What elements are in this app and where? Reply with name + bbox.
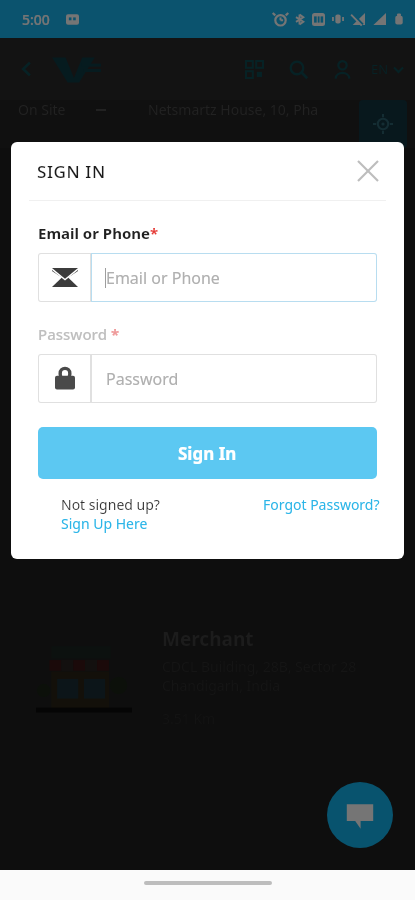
button[interactable]: Search bbox=[283, 54, 313, 84]
staticText: Password bbox=[106, 368, 179, 390]
staticText: Merchant bbox=[162, 626, 254, 652]
button[interactable]: On Site bbox=[18, 100, 148, 119]
button[interactable]: Back bbox=[10, 52, 44, 86]
staticText: SIGN IN bbox=[37, 160, 106, 183]
staticText: Password bbox=[38, 324, 111, 344]
button[interactable]: Locate me bbox=[359, 100, 407, 148]
button[interactable]: Scan QR code bbox=[239, 54, 269, 84]
button[interactable]: Chat bbox=[327, 782, 393, 848]
staticText: * bbox=[150, 223, 159, 243]
staticText: Netsmartz House, 10, Pha bbox=[148, 100, 319, 119]
button[interactable]: Close bbox=[350, 153, 386, 189]
staticText: Forgot Password? bbox=[263, 495, 380, 514]
button[interactable]: EN bbox=[371, 60, 403, 78]
button[interactable]: Email or Phone bbox=[38, 253, 377, 302]
button[interactable]: Not signed up? Sign Up Here bbox=[61, 495, 191, 533]
staticText: 5:00 bbox=[22, 10, 50, 29]
button[interactable]: Forgot Password? bbox=[263, 495, 380, 514]
staticText: * bbox=[111, 324, 120, 344]
staticText: EN bbox=[371, 60, 389, 78]
button[interactable]: Password bbox=[38, 354, 377, 403]
staticText: Not signed up? Sign Up Here bbox=[61, 495, 191, 533]
button[interactable]: Sign In bbox=[38, 427, 377, 479]
button[interactable]: Account bbox=[327, 54, 357, 84]
staticText: On Site bbox=[18, 100, 66, 119]
staticText: Email or Phone bbox=[106, 267, 220, 289]
staticText: Sign In bbox=[178, 442, 237, 465]
staticText: Email or Phone bbox=[38, 223, 150, 243]
